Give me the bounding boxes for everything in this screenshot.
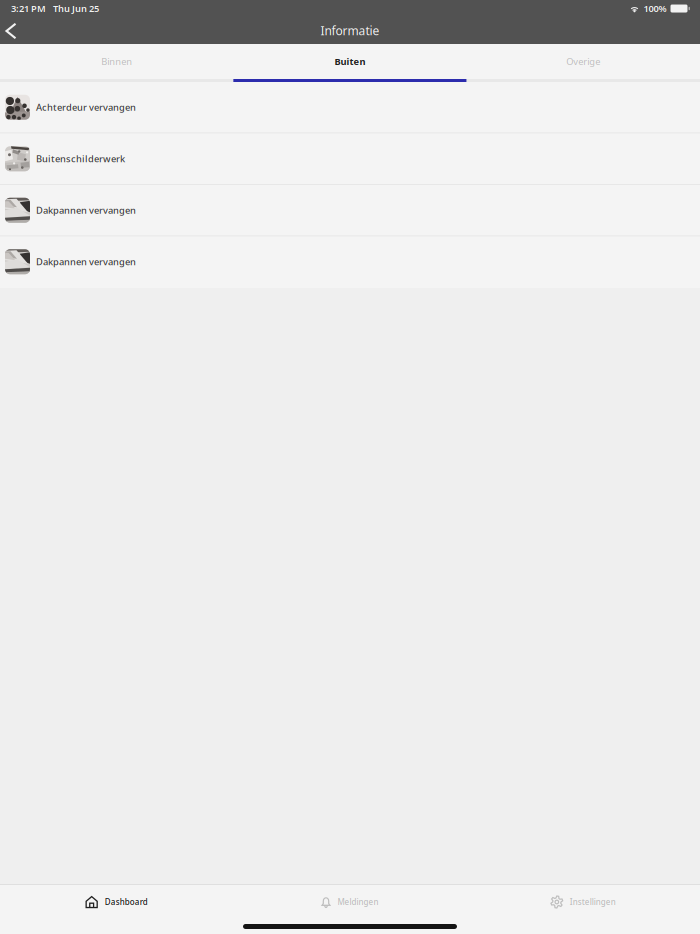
button[interactable]: Dashboard — [0, 885, 233, 919]
staticText: Informatie — [320, 22, 379, 38]
staticText: Buitenschilderwerk — [36, 153, 125, 165]
button[interactable]: Dakpannen vervangen — [0, 236, 700, 287]
staticText: Overige — [566, 55, 600, 68]
button[interactable]: Dakpannen vervangen — [0, 185, 700, 235]
button[interactable]: Buitenschilderwerk — [0, 133, 700, 184]
button[interactable]: Buiten — [233, 44, 467, 82]
staticText: Dashboard — [105, 897, 148, 907]
staticText: Instellingen — [570, 897, 616, 907]
staticText: 100% — [643, 2, 666, 15]
button[interactable]: Instellingen — [467, 885, 700, 919]
staticText: 3:21 PM — [11, 2, 46, 15]
staticText: Binnen — [101, 55, 132, 68]
button[interactable]: Achterdeur vervangen — [0, 82, 700, 132]
button[interactable]: Binnen — [0, 44, 233, 82]
staticText: Thu Jun 25 — [53, 2, 99, 15]
button[interactable]: Overige — [467, 44, 700, 82]
button[interactable]: Back — [0, 20, 23, 41]
button[interactable]: Meldingen — [233, 885, 467, 919]
staticText: Meldingen — [337, 897, 378, 907]
staticText: Achterdeur vervangen — [36, 101, 136, 113]
staticText: Dakpannen vervangen — [36, 256, 136, 268]
staticText: Buiten — [334, 55, 365, 68]
staticText: Dakpannen vervangen — [36, 204, 136, 216]
